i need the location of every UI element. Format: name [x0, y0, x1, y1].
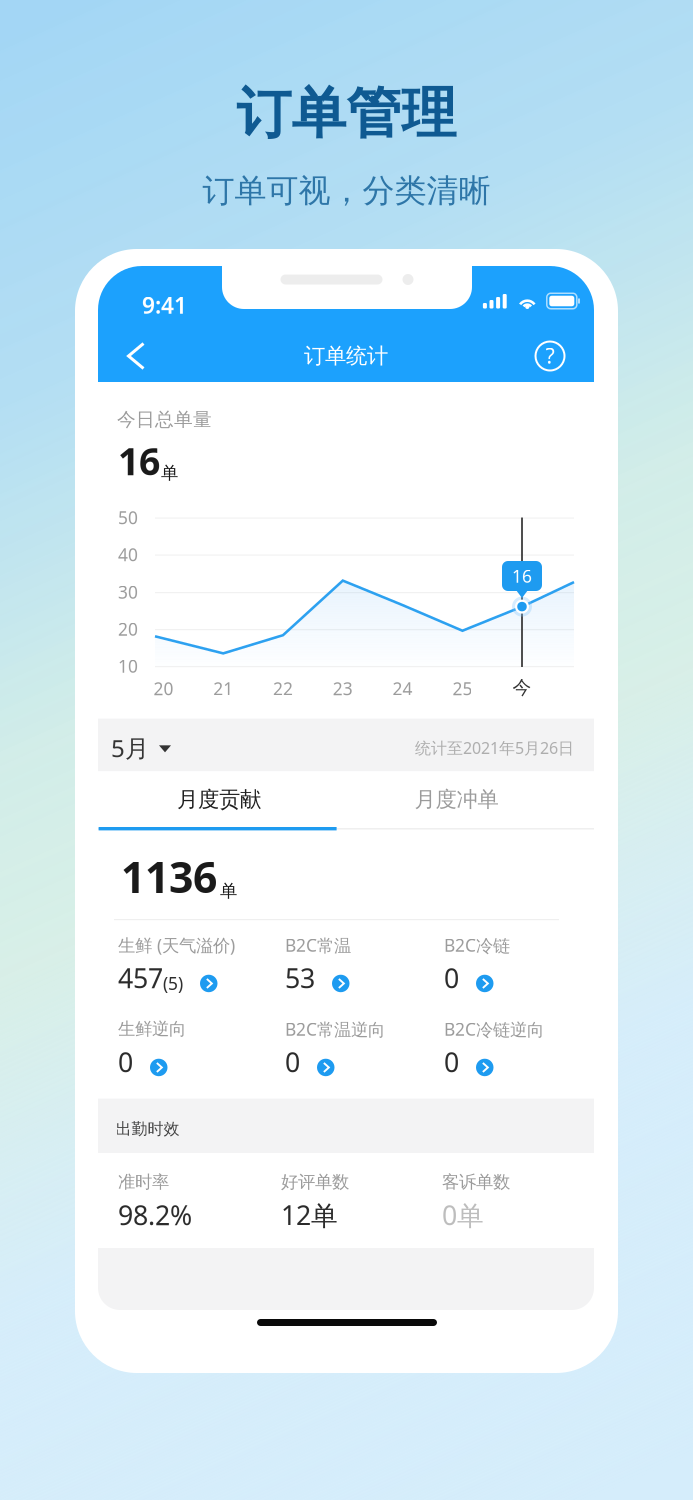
button[interactable]: B2C常温 [285, 934, 444, 994]
staticText: (5) [163, 972, 183, 995]
staticText: 订单统计 [304, 343, 388, 369]
staticText: 月度贡献 [177, 786, 261, 813]
button[interactable]: B2C冷链 [444, 934, 594, 994]
staticText: 10 [118, 654, 138, 677]
button[interactable]: 5月 [110, 722, 201, 774]
staticText: 准时率 [118, 1171, 169, 1193]
staticText: 统计至2021年5月26日 [415, 737, 574, 758]
staticText: 生鲜逆向 [118, 1018, 186, 1040]
staticText: 16 [512, 564, 532, 587]
staticText: 今 [512, 676, 531, 699]
button[interactable]: 月度冲单 [340, 771, 573, 828]
staticText: 20 [153, 677, 173, 700]
staticText: 0 [285, 1044, 300, 1080]
staticText: 21 [213, 677, 233, 700]
button[interactable]: B2C常温逆向 [285, 1018, 444, 1078]
button[interactable]: 月度贡献 [98, 771, 340, 828]
staticText: 生鲜 (天气溢价) [118, 933, 235, 956]
staticText: B2C冷链 [444, 933, 510, 956]
staticText: 22 [273, 677, 293, 700]
staticText: B2C常温 [285, 933, 351, 956]
staticText: 订单可视，分类清晰 [202, 171, 490, 210]
staticText: 9:41 [142, 290, 187, 320]
staticText: 客诉单数 [442, 1171, 510, 1193]
staticText: 0 [118, 1044, 133, 1080]
staticText: 50 [118, 506, 138, 529]
staticText: 单 [220, 880, 237, 902]
staticText: 25 [452, 677, 472, 700]
staticText: 12单 [281, 1197, 338, 1233]
staticText: 20 [118, 617, 138, 640]
staticText: 好评单数 [281, 1171, 349, 1193]
staticText: B2C冷链逆向 [444, 1017, 544, 1040]
staticText: 23 [333, 677, 353, 700]
staticText: 30 [118, 580, 138, 603]
staticText: 53 [285, 960, 315, 996]
button[interactable]: B2C冷链逆向 [444, 1018, 594, 1078]
staticText: 16 [118, 436, 160, 486]
button[interactable]: Help [520, 330, 580, 382]
staticText: 0 [444, 1044, 459, 1080]
staticText: 457 [118, 960, 163, 996]
button[interactable]: 生鲜逆向 [118, 1018, 285, 1078]
staticText: ? [545, 341, 554, 370]
staticText: 1136 [121, 848, 217, 905]
staticText: B2C常温逆向 [285, 1017, 385, 1040]
staticText: 单 [161, 462, 178, 484]
staticText: 98.2% [118, 1197, 192, 1233]
staticText: 0 [444, 960, 459, 996]
staticText: 0单 [442, 1197, 484, 1233]
staticText: 月度冲单 [414, 786, 498, 813]
button[interactable]: Back [112, 330, 168, 382]
staticText: 订单管理 [236, 80, 456, 147]
staticText: 今日总单量 [117, 408, 212, 431]
staticText: 出勤时效 [115, 1119, 179, 1139]
staticText: 5月 [111, 732, 149, 764]
staticText: 24 [393, 677, 413, 700]
button[interactable]: 生鲜 (天气溢价) [118, 934, 285, 994]
staticText: 40 [118, 543, 138, 566]
